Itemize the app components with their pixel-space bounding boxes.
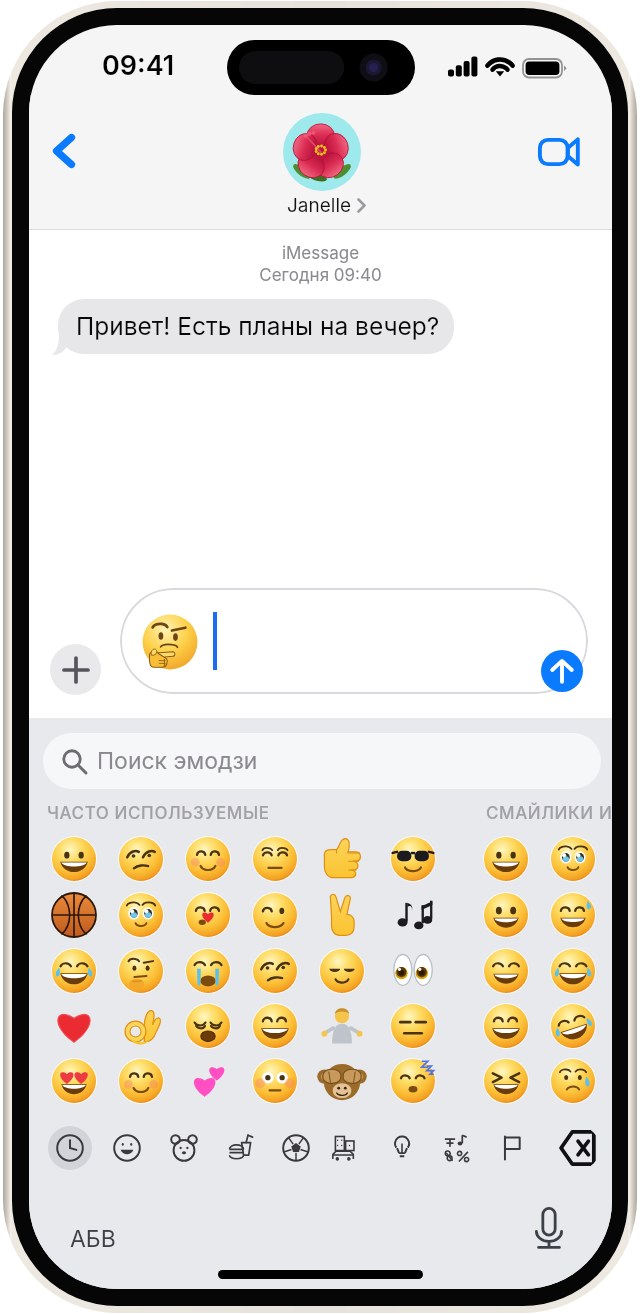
button[interactable]: Add attachment [50,644,101,695]
button[interactable]: Dictation [527,1206,571,1250]
button[interactable]: Food and drink [219,1126,263,1170]
button[interactable]: Symbols [435,1126,479,1170]
button[interactable]: Delete [556,1126,600,1170]
staticText: Сегодня 09:40 [29,265,612,286]
button[interactable]: Back [35,122,93,180]
button[interactable]: АБВ [59,1217,127,1261]
button[interactable]: FaceTime video call [530,123,588,181]
staticText: СМАЙЛИКИ И [486,803,612,824]
button[interactable]: Objects [380,1126,424,1170]
staticText: АБВ [70,1225,116,1253]
button[interactable]: Recently used [48,1126,92,1170]
button[interactable]: Smileys and people [105,1126,149,1170]
button[interactable]: Animals and nature [162,1126,206,1170]
button[interactable]: Activity [274,1126,318,1170]
button[interactable]: Flags [490,1126,534,1170]
staticText: Привет! Есть планы на вечер? [76,311,440,341]
button[interactable]: Search Emoji [43,733,601,789]
staticText: iMessage [29,243,612,264]
staticText: 09:41 [102,49,175,82]
button[interactable]: Contact photo [283,113,361,191]
staticText: Janelle [287,194,352,217]
button[interactable]: Janelle [287,194,366,217]
button[interactable]: Travel and places [323,1126,367,1170]
staticText: ЧАСТО ИСПОЛЬЗУЕМЫЕ [47,803,270,824]
button[interactable]: Привет! Есть планы на вечер? [58,299,454,354]
button[interactable]: Send [541,650,583,692]
button[interactable]: Message field [120,588,588,694]
staticText: Поиск эмодзи [97,747,258,775]
